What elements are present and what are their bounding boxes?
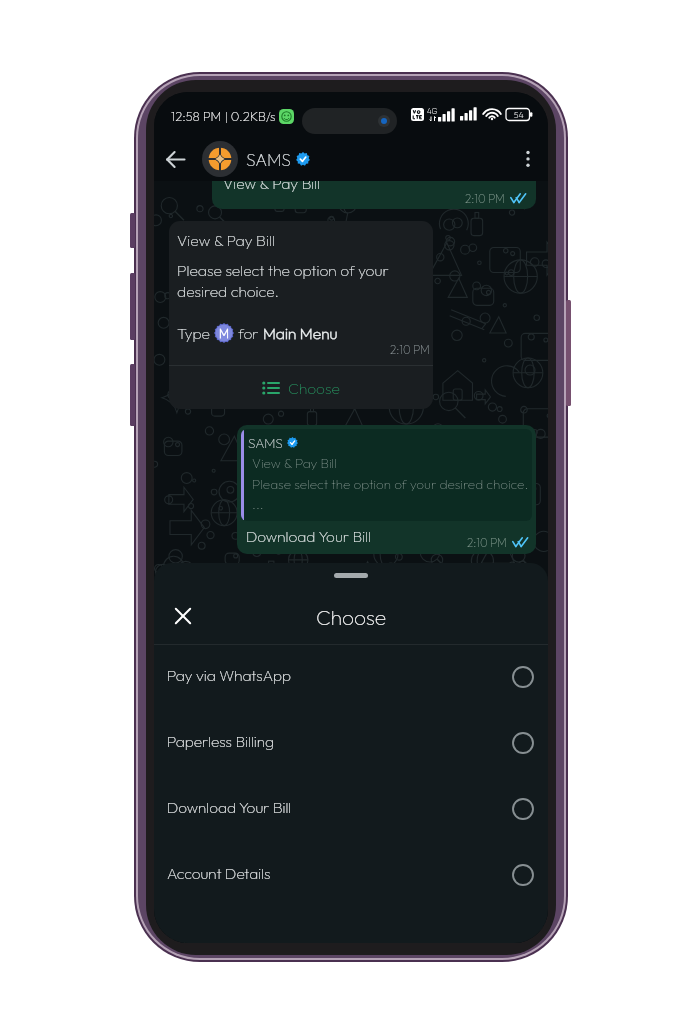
staticText: View & Pay Bill xyxy=(223,173,321,193)
button[interactable]: SAMS xyxy=(202,137,310,181)
staticText: Account Details xyxy=(167,864,271,883)
staticText: View & Pay Bill xyxy=(177,230,275,250)
button[interactable]: Paperless Billing xyxy=(154,711,548,777)
staticText: Choose xyxy=(288,378,340,398)
staticText: SAMS xyxy=(246,148,291,170)
staticText: View & Pay Bill xyxy=(252,454,337,471)
staticText: 2:10 PM xyxy=(465,191,505,205)
staticText: 12:58 PM | 0.2KB/s xyxy=(171,108,276,124)
staticText: Download Your Bill xyxy=(167,798,292,817)
staticText: 2:10 PM xyxy=(467,535,507,549)
button[interactable]: Close xyxy=(166,599,200,633)
staticText: 4G xyxy=(427,106,438,115)
staticText: Choose xyxy=(316,604,387,630)
button[interactable]: Pay via WhatsApp xyxy=(154,645,548,711)
button[interactable]: Choose xyxy=(169,366,433,409)
staticText: SAMS xyxy=(248,434,283,451)
staticText: M xyxy=(219,326,229,341)
button[interactable]: More options xyxy=(513,144,543,174)
staticText: 54 xyxy=(514,109,524,120)
staticText: Paperless Billing xyxy=(167,732,275,751)
staticText: Please select the option of your desired… xyxy=(177,260,401,301)
button[interactable]: Back xyxy=(159,143,191,175)
staticText: ... xyxy=(252,495,264,512)
staticText: Download Your Bill xyxy=(246,527,372,546)
staticText: Please select the option of your desired… xyxy=(252,475,529,492)
staticText: for xyxy=(238,323,259,343)
staticText: Pay via WhatsApp xyxy=(167,666,292,685)
staticText: 2:10 PM xyxy=(390,342,430,356)
staticText: Type xyxy=(177,323,210,343)
staticText: Main Menu xyxy=(263,323,338,343)
button[interactable]: Download Your Bill xyxy=(154,777,548,843)
button[interactable]: Account Details xyxy=(154,843,548,909)
